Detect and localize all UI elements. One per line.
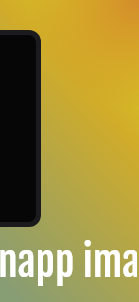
staticText: napp image bbox=[0, 237, 137, 287]
